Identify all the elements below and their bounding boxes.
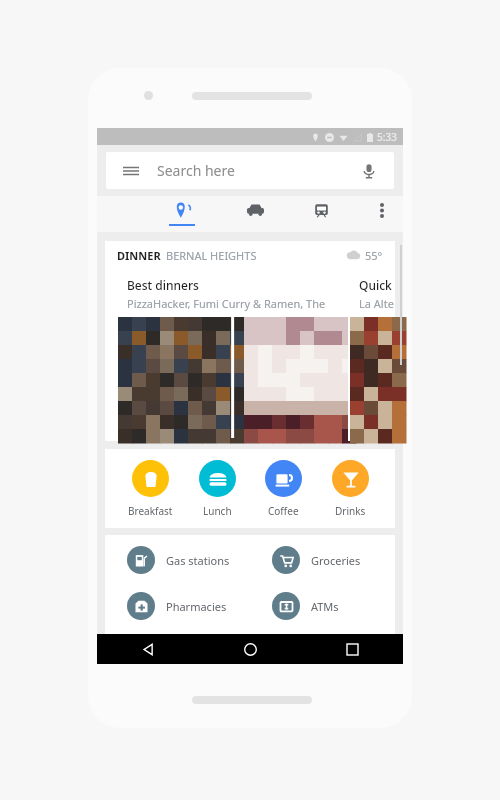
button[interactable]: Quick b [348,269,395,441]
staticText: Groceries [311,553,361,568]
staticText: Coffee [268,504,299,518]
staticText: PizzaHacker, Fumi Curry & Ramen, The Fro… [127,296,344,311]
staticText: Pharmacies [166,599,227,614]
button[interactable]: Drinks [319,456,381,522]
button[interactable]: Best dinners [116,269,344,441]
staticText: Best dinners [127,277,199,293]
button[interactable]: Home [199,634,301,664]
staticText: Search here [157,161,235,180]
button[interactable]: ATMs [250,589,395,623]
button[interactable]: Gas stations [105,543,250,577]
button[interactable]: Back [97,634,199,664]
button[interactable]: More options [365,196,399,232]
button[interactable]: Voice search [358,160,380,182]
button[interactable]: Menu [120,160,142,182]
staticText: Quick b [359,277,395,293]
button[interactable]: Breakfast [119,456,181,522]
staticText: ATMs [311,599,339,614]
button[interactable]: Explore [155,196,209,232]
staticText: Lunch [203,504,232,518]
staticText: BERNAL HEIGHTS [166,248,257,263]
button[interactable]: Groceries [250,543,395,577]
staticText: DINNER [117,248,161,263]
staticText: Breakfast [128,504,173,518]
staticText: La Alte [359,296,394,311]
button[interactable]: Transit [301,196,341,232]
button[interactable]: Recent apps [301,634,403,664]
button[interactable]: Coffee [252,456,314,522]
staticText: 55° [365,248,383,263]
staticText: Gas stations [166,553,230,568]
button[interactable]: Lunch [186,456,248,522]
button[interactable]: Pharmacies [105,589,250,623]
button[interactable]: Menu [106,152,394,189]
staticText: Drinks [335,504,366,518]
button[interactable]: Driving [235,196,275,232]
staticText: 5:33 [377,130,397,144]
